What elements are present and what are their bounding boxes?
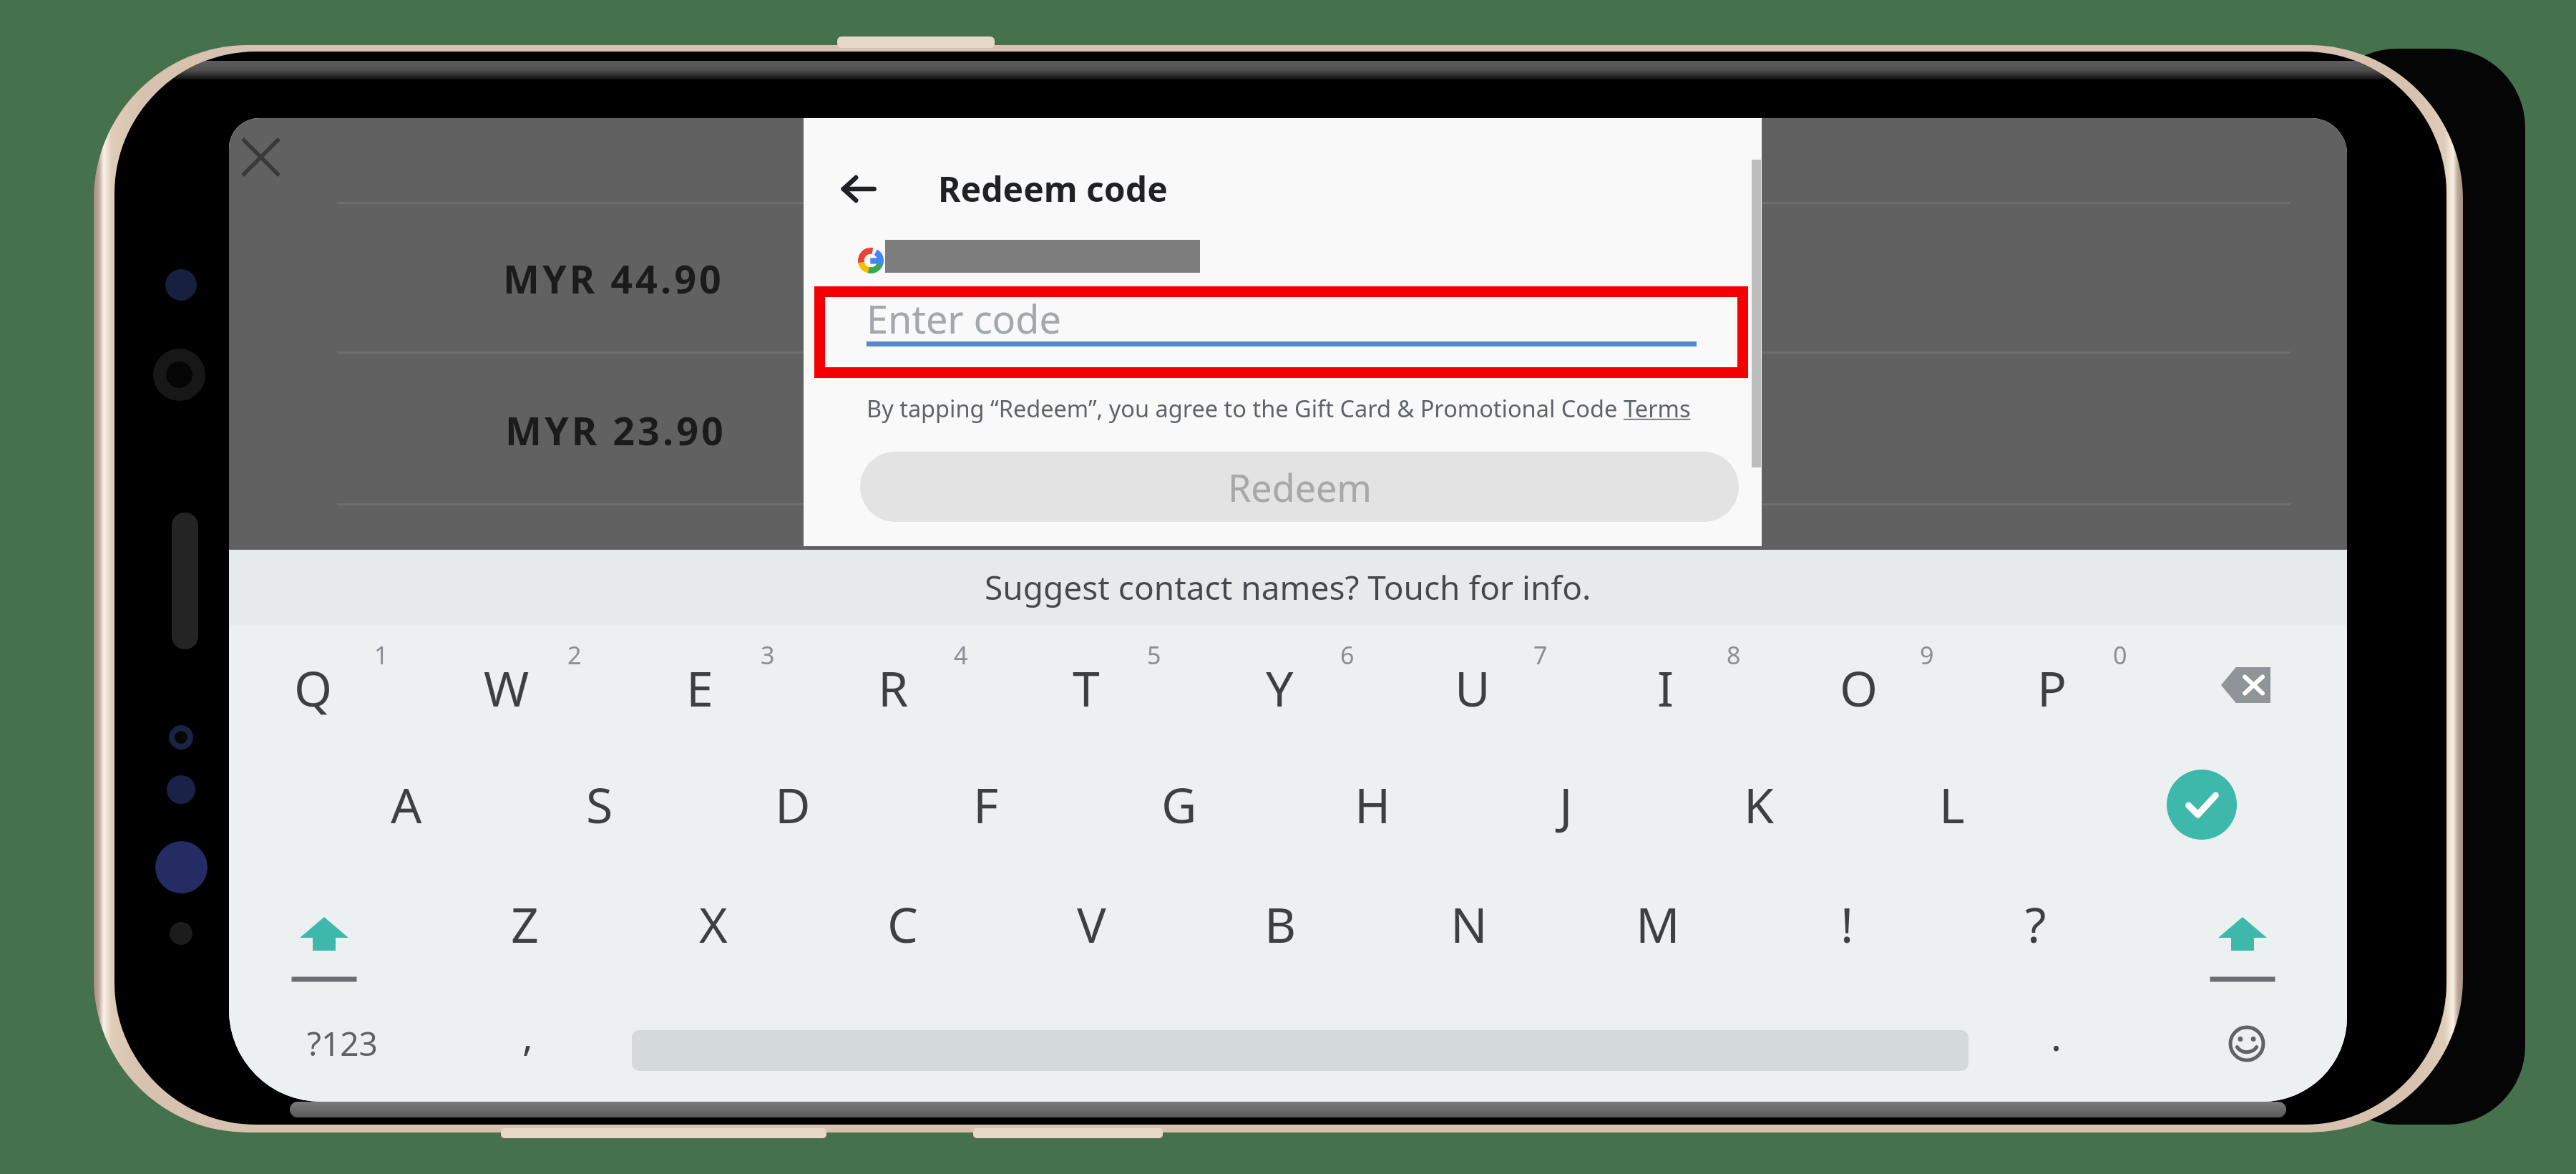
staticText: 4 <box>954 639 968 671</box>
staticText: MYR 23.90 <box>505 404 726 457</box>
button[interactable]: V <box>995 864 1188 984</box>
staticText: R <box>878 654 909 721</box>
staticText: E <box>686 654 713 721</box>
button[interactable]: Emoji <box>2154 984 2340 1102</box>
staticText: 9 <box>1920 639 1934 671</box>
staticText: V <box>1077 891 1106 957</box>
button[interactable]: S <box>503 744 696 864</box>
staticText: Enter code <box>867 292 1061 345</box>
button[interactable]: N <box>1372 864 1566 984</box>
staticText: B <box>1264 891 1297 957</box>
button[interactable]: M <box>1561 864 1755 984</box>
button[interactable]: , <box>435 984 621 1102</box>
staticText: J <box>1559 771 1573 838</box>
button[interactable]: H <box>1276 744 1469 864</box>
button[interactable]: A <box>310 744 503 864</box>
staticText: . <box>2051 1008 2062 1062</box>
staticText: M <box>1636 891 1680 957</box>
button[interactable]: D <box>696 744 889 864</box>
staticText: ? <box>2025 891 2046 957</box>
staticText: F <box>973 771 999 838</box>
button[interactable]: ? <box>1939 864 2132 984</box>
staticText: 1 <box>374 639 389 671</box>
staticText: By tapping “Redeem”, you agree to the Gi… <box>867 392 1624 424</box>
button[interactable]: P <box>1956 625 2149 744</box>
button[interactable]: Back <box>829 159 889 219</box>
button[interactable]: G <box>1083 744 1276 864</box>
staticText: A <box>391 771 422 838</box>
button[interactable]: Backspace <box>2149 625 2342 744</box>
button[interactable]: J <box>1469 744 1662 864</box>
button[interactable]: Redeem <box>860 452 1739 522</box>
button[interactable]: Shift <box>2146 864 2339 984</box>
button[interactable]: C <box>806 864 999 984</box>
staticText: Terms <box>1624 392 1691 424</box>
button[interactable]: ?123 <box>249 984 435 1102</box>
staticText: H <box>1355 771 1391 838</box>
staticText: 6 <box>1340 639 1355 671</box>
staticText: Redeem <box>1228 462 1372 513</box>
staticText: ?123 <box>307 1021 378 1066</box>
staticText: Y <box>1266 654 1294 721</box>
staticText: W <box>484 654 530 721</box>
button[interactable]: Space <box>632 1030 1968 1071</box>
staticText: Redeem code <box>938 165 1168 212</box>
button[interactable]: B <box>1184 864 1377 984</box>
button[interactable]: Enter <box>2105 744 2298 864</box>
button[interactable]: . <box>1963 984 2150 1102</box>
staticText: Q <box>294 654 333 721</box>
button[interactable]: Shift <box>229 864 421 984</box>
staticText: C <box>887 891 918 957</box>
button[interactable]: U <box>1376 625 1569 744</box>
button[interactable]: ! <box>1750 864 1943 984</box>
button[interactable]: Z <box>428 864 621 984</box>
staticText: 0 <box>2113 639 2127 671</box>
staticText: P <box>2037 654 2067 721</box>
staticText: 3 <box>761 639 775 671</box>
staticText: MYR 44.90 <box>503 252 724 305</box>
button[interactable]: R <box>796 625 990 744</box>
button[interactable]: F <box>889 744 1083 864</box>
button[interactable]: L <box>1855 744 2049 864</box>
staticText: 2 <box>567 639 582 671</box>
staticText: N <box>1450 891 1488 957</box>
staticText: L <box>1939 771 1965 838</box>
button[interactable]: Q <box>229 625 410 744</box>
button[interactable]: T <box>990 625 1183 744</box>
staticText: U <box>1455 654 1491 721</box>
staticText: 8 <box>1727 639 1741 671</box>
button[interactable]: E <box>603 625 796 744</box>
button[interactable]: K <box>1662 744 1855 864</box>
staticText: K <box>1744 771 1775 838</box>
staticText: ! <box>1840 891 1854 957</box>
staticText: 5 <box>1147 639 1161 671</box>
button[interactable]: O <box>1762 625 1956 744</box>
button[interactable]: I <box>1569 625 1762 744</box>
button[interactable]: Y <box>1183 625 1376 744</box>
staticText: Z <box>511 891 539 957</box>
staticText: D <box>775 771 811 838</box>
staticText: Suggest contact names? Touch for info. <box>985 565 1591 610</box>
staticText: 7 <box>1533 639 1548 671</box>
staticText: T <box>1073 654 1100 721</box>
staticText: O <box>1840 654 1878 721</box>
staticText: I <box>1657 654 1674 721</box>
staticText: , <box>522 1008 534 1062</box>
staticText: G <box>1161 771 1197 838</box>
staticText: S <box>586 771 613 838</box>
button[interactable]: X <box>617 864 810 984</box>
button[interactable]: W <box>410 625 603 744</box>
staticText: X <box>699 891 728 957</box>
